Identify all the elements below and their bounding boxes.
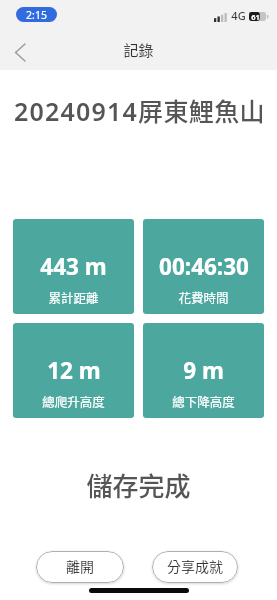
- staticText: 記錄: [123, 39, 154, 61]
- button[interactable]: 分享成就: [152, 551, 238, 583]
- staticText: 4G: [231, 8, 246, 23]
- staticText: 12 m: [47, 355, 101, 386]
- button[interactable]: 12 m: [13, 323, 134, 418]
- staticText: 花費時間: [178, 288, 229, 306]
- staticText: 離開: [66, 556, 94, 576]
- button[interactable]: Back: [4, 36, 36, 68]
- staticText: 總下降高度: [172, 392, 235, 410]
- button[interactable]: 離開: [36, 551, 124, 583]
- staticText: 總爬升高度: [42, 392, 105, 410]
- button[interactable]: 443 m: [13, 219, 134, 314]
- staticText: 20240914屏東鯉魚山: [14, 92, 266, 128]
- staticText: 2:15: [26, 8, 47, 22]
- staticText: 61: [251, 12, 260, 21]
- staticText: 儲存完成: [86, 466, 191, 504]
- staticText: 00:46:30: [159, 251, 249, 282]
- staticText: 分享成就: [167, 556, 223, 576]
- staticText: 9 m: [183, 355, 224, 386]
- staticText: 累計距離: [48, 288, 99, 306]
- button[interactable]: 00:46:30: [143, 219, 264, 314]
- button[interactable]: 9 m: [143, 323, 264, 418]
- staticText: 443 m: [40, 251, 107, 282]
